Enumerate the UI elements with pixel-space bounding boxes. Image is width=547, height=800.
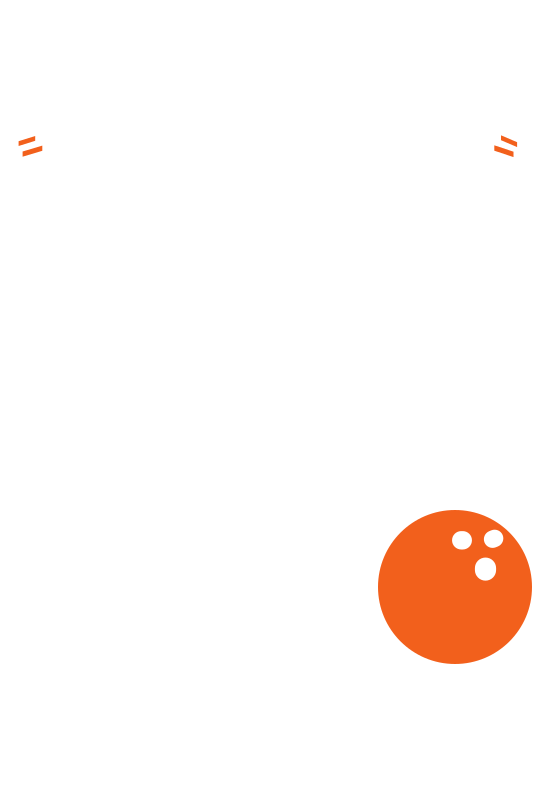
group: Bowling ball rolling: [0, 0, 547, 800]
